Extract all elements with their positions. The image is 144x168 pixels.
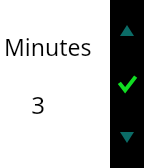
button[interactable]: Confirm	[110, 60, 144, 107]
staticText: Minutes	[4, 31, 92, 62]
staticText: 3	[0, 88, 76, 121]
button[interactable]: Increase minutes	[110, 0, 144, 60]
button[interactable]: Decrease minutes	[110, 107, 144, 168]
